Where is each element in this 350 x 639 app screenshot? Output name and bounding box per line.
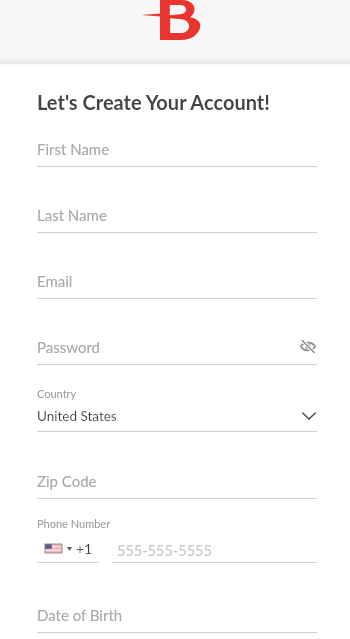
button[interactable]: First Name — [37, 135, 317, 167]
staticText: Country — [37, 387, 77, 400]
staticText: Password — [37, 338, 100, 356]
staticText: United States — [37, 408, 117, 424]
staticText: 555-555-5555 — [117, 542, 212, 559]
staticText: +1 — [76, 540, 93, 557]
button[interactable]: Country code — [37, 536, 99, 562]
button[interactable]: 555-555-5555 — [112, 538, 317, 562]
button[interactable]: Last Name — [37, 201, 317, 233]
staticText: Last Name — [37, 206, 107, 224]
button[interactable]: Country — [37, 386, 317, 432]
staticText: First Name — [37, 140, 110, 158]
button[interactable]: Show password — [297, 335, 319, 357]
button[interactable]: Password — [37, 333, 317, 365]
button[interactable]: Date of Birth — [37, 601, 317, 633]
button[interactable]: Zip Code — [37, 467, 317, 499]
other: Select country — [299, 406, 319, 426]
staticText: Date of Birth — [37, 606, 123, 624]
button[interactable]: Email — [37, 267, 317, 299]
staticText: Phone Number — [37, 517, 111, 530]
staticText: Let's Create Your Account! — [37, 90, 270, 114]
staticText: Zip Code — [37, 472, 97, 490]
staticText: Email — [37, 272, 73, 290]
